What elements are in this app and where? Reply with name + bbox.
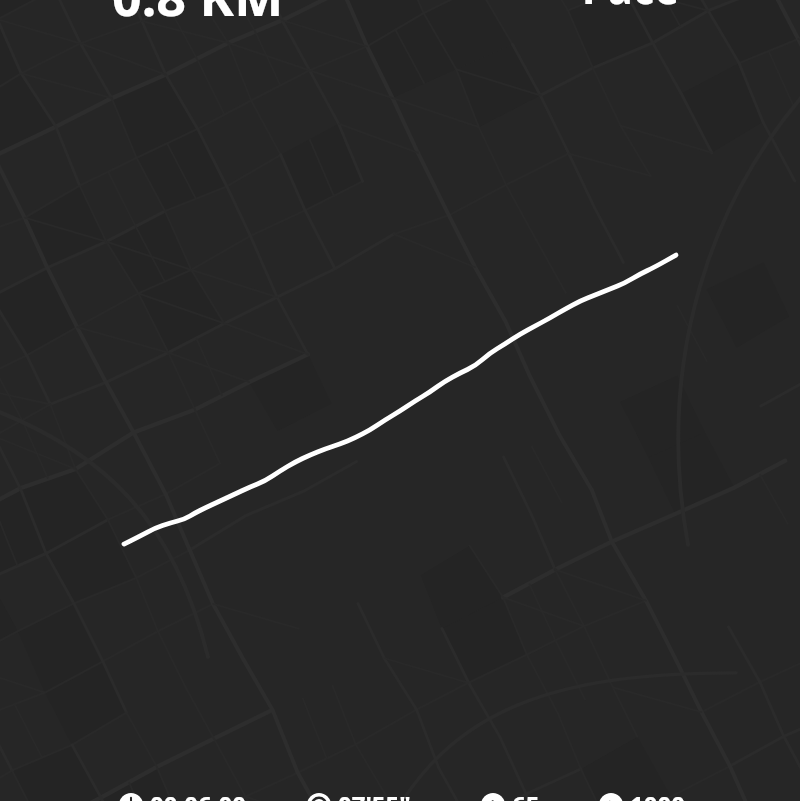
staticText: 00:06:00 bbox=[150, 788, 246, 801]
staticText: 1000 bbox=[630, 788, 685, 801]
button[interactable]: Average pace bbox=[307, 788, 411, 801]
staticText: 07'55" bbox=[338, 788, 411, 801]
button[interactable]: Calories bbox=[599, 788, 685, 801]
button[interactable]: Route map bbox=[0, 0, 800, 801]
button[interactable]: 0.8 KM bbox=[112, 0, 284, 31]
button[interactable]: Heart rate bbox=[481, 788, 540, 801]
button[interactable]: Duration bbox=[119, 788, 246, 801]
staticText: 65 bbox=[512, 788, 540, 801]
button[interactable]: Pace bbox=[582, 0, 680, 19]
